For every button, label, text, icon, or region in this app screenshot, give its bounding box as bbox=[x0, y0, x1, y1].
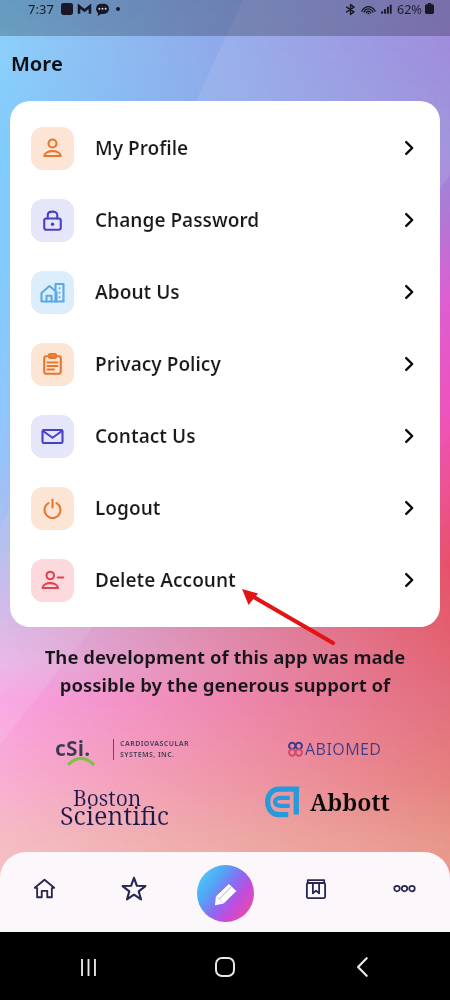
staticText: cSi. bbox=[55, 734, 91, 763]
staticText: Delete Account bbox=[95, 567, 236, 593]
button[interactable]: Recents bbox=[74, 953, 102, 981]
staticText: ABIOMED bbox=[305, 738, 382, 760]
button[interactable]: Privacy Policy bbox=[10, 328, 440, 400]
staticText: Logout bbox=[95, 495, 161, 521]
button[interactable]: Logout bbox=[10, 472, 440, 544]
button[interactable]: Back bbox=[348, 953, 376, 981]
staticText: The development of this app was made pos… bbox=[0, 644, 450, 697]
button[interactable]: Change Password bbox=[10, 184, 440, 256]
staticText: Contact Us bbox=[95, 423, 196, 449]
staticText: CARDIOVASCULAR SYSTEMS, INC. bbox=[120, 739, 189, 759]
staticText: 62% bbox=[397, 1, 422, 18]
button[interactable]: Compose bbox=[197, 865, 254, 922]
button[interactable]: About Us bbox=[10, 256, 440, 328]
button[interactable]: Home bbox=[211, 953, 239, 981]
staticText: 7:37 bbox=[28, 0, 54, 18]
staticText: About Us bbox=[95, 279, 180, 305]
staticText: Abbott bbox=[310, 786, 390, 817]
staticText: My Profile bbox=[95, 135, 189, 161]
staticText: Scientific bbox=[60, 798, 170, 832]
staticText: Privacy Policy bbox=[95, 351, 221, 377]
button[interactable]: Favorites bbox=[109, 864, 159, 914]
staticText: Boston bbox=[73, 784, 142, 813]
button[interactable]: My Profile bbox=[10, 112, 440, 184]
button[interactable]: More bbox=[380, 864, 429, 913]
button[interactable]: Contact Us bbox=[10, 400, 440, 472]
staticText: Change Password bbox=[95, 207, 260, 233]
staticText: More bbox=[11, 50, 63, 77]
button[interactable]: Home bbox=[21, 865, 68, 912]
button[interactable]: Delete Account bbox=[10, 544, 440, 616]
button[interactable]: Library bbox=[292, 865, 340, 913]
